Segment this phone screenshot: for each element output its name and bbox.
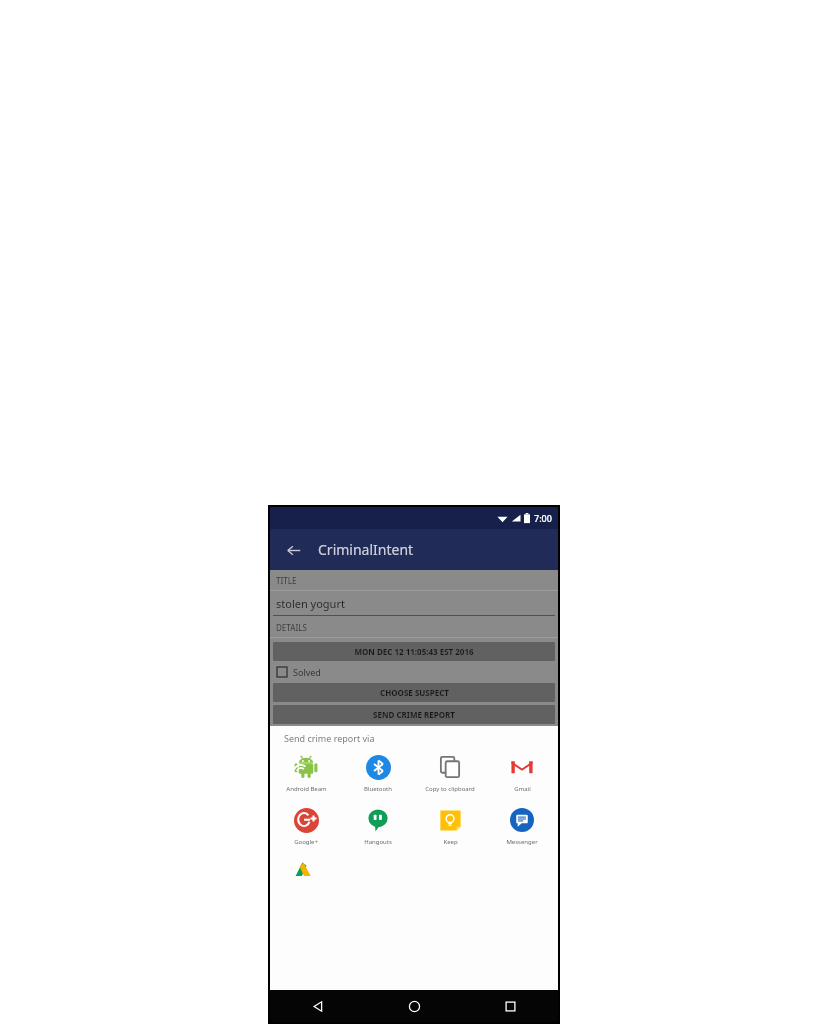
button[interactable]: Hangouts [342,807,414,846]
button[interactable]: Keep [414,807,486,846]
button[interactable]: Solved [270,661,558,683]
staticText: MON DEC 12 11:05:43 EST 2016 [354,646,474,657]
staticText: Hangouts [364,838,392,846]
button[interactable]: Back [278,535,308,565]
button[interactable]: Google Drive [293,860,319,886]
staticText: SEND CRIME REPORT [373,709,455,720]
staticText: Copy to clipboard [425,785,475,793]
button[interactable]: Home [366,990,462,1022]
staticText: CriminalIntent [318,540,414,559]
staticText: Messenger [506,838,538,846]
staticText: Android Beam [286,785,327,793]
staticText: TITLE [276,575,297,586]
staticText: Keep [443,838,458,846]
button[interactable]: Android Beam [270,754,342,793]
staticText: Solved [293,666,321,678]
staticText: Send crime report via [284,732,375,744]
staticText: DETAILS [276,622,307,633]
button[interactable]: Recents [462,990,558,1022]
staticText: 7:00 [534,512,552,524]
button[interactable]: Google+ [270,807,342,846]
button[interactable]: Copy to clipboard [414,754,486,793]
button[interactable]: Bluetooth [342,754,414,793]
staticText: Bluetooth [364,785,392,793]
button[interactable]: Gmail [486,754,558,793]
staticText: CHOOSE SUSPECT [380,687,449,698]
button[interactable]: Messenger [486,807,558,846]
button[interactable]: stolen yogurt [270,591,558,616]
staticText: Gmail [514,785,531,793]
staticText: stolen yogurt [276,596,345,611]
button[interactable]: Back [270,990,366,1022]
button[interactable]: MON DEC 12 11:05:43 EST 2016 [273,642,555,661]
button[interactable]: CHOOSE SUSPECT [273,683,555,702]
button[interactable]: SEND CRIME REPORT [273,705,555,724]
staticText: Google+ [294,838,318,846]
